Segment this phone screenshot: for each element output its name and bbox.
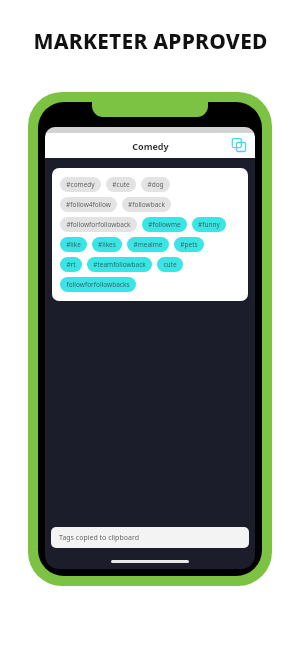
button[interactable]: #dog [141, 177, 170, 192]
staticText: #likes [98, 240, 116, 249]
staticText: #like [66, 240, 81, 249]
button[interactable]: #mealme [127, 237, 169, 252]
staticText: #pets [180, 240, 198, 249]
button[interactable]: followforfollowbacks [60, 277, 136, 292]
button[interactable]: #funny [192, 217, 226, 232]
staticText: Comedy [132, 140, 169, 152]
button[interactable]: #like [60, 237, 87, 252]
staticText: #dog [147, 180, 164, 189]
button[interactable]: #followforfollowback [60, 217, 137, 232]
button[interactable]: #teamfollowback [87, 257, 152, 272]
staticText: #comedy [66, 180, 95, 189]
button[interactable]: Tags copied to clipboard [51, 527, 249, 548]
button[interactable]: cute [157, 257, 183, 272]
staticText: #rt [66, 260, 76, 269]
staticText: Tags copied to clipboard [59, 533, 139, 543]
button[interactable]: #pets [174, 237, 204, 252]
staticText: cute [163, 260, 177, 269]
staticText: #followme [148, 220, 181, 229]
button[interactable]: #follow4follow [60, 197, 117, 212]
staticText: #cute [112, 180, 130, 189]
staticText: #teamfollowback [93, 260, 146, 269]
button[interactable]: #followback [122, 197, 171, 212]
staticText: followforfollowbacks [66, 280, 130, 289]
button[interactable]: #comedy [60, 177, 101, 192]
button[interactable]: #followme [142, 217, 187, 232]
staticText: #follow4follow [66, 200, 111, 209]
button[interactable]: #cute [106, 177, 136, 192]
staticText: #funny [198, 220, 220, 229]
button[interactable]: #likes [92, 237, 122, 252]
button[interactable]: #rt [60, 257, 82, 272]
button[interactable]: Copy tags [231, 137, 248, 154]
staticText: #mealme [133, 240, 163, 249]
staticText: #followforfollowback [66, 220, 131, 229]
staticText: MARKETER APPROVED [33, 27, 268, 56]
staticText: #followback [128, 200, 165, 209]
